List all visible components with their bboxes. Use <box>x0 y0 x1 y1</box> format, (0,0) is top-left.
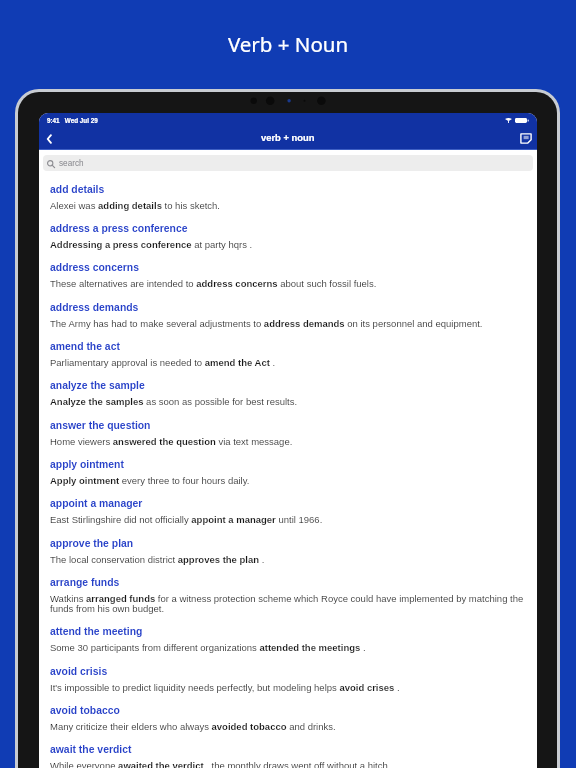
staticText: East Stirlingshire did not officially ap… <box>50 514 323 525</box>
staticText: arrange funds <box>50 577 120 589</box>
button[interactable]: address concerns <box>50 257 526 297</box>
staticText: avoid tobacco <box>50 705 120 717</box>
staticText: appoint a manager <box>50 498 143 510</box>
staticText: Parliamentary approval is needed to amen… <box>50 357 276 368</box>
button[interactable]: analyze the sample <box>50 375 526 415</box>
staticText: While everyone awaited the verdict , the… <box>50 760 391 768</box>
staticText: Some 30 participants from different orga… <box>50 642 366 653</box>
staticText: Watkins arranged funds for a witness pro… <box>50 593 526 614</box>
button[interactable]: address a press conference <box>50 218 526 257</box>
staticText: analyze the sample <box>50 380 145 392</box>
staticText: Analyze the samples as soon as possible … <box>50 396 298 407</box>
staticText: verb + noun <box>261 132 315 143</box>
staticText: 9:41 Wed Jul 29 <box>47 117 98 124</box>
staticText: address demands <box>50 302 139 314</box>
staticText: address a press conference <box>50 223 188 235</box>
button[interactable]: add details <box>50 179 526 218</box>
staticText: await the verdict <box>50 744 132 756</box>
staticText: The local conservation district approves… <box>50 554 265 565</box>
staticText: Alexei was adding details to his sketch. <box>50 200 220 211</box>
staticText: apply ointment <box>50 459 124 471</box>
button[interactable]: Notes <box>515 128 537 149</box>
button[interactable]: answer the question <box>50 415 526 454</box>
staticText: Many criticize their elders who always a… <box>50 721 336 732</box>
staticText: Addressing a press conference at party h… <box>50 239 253 250</box>
staticText: attend the meeting <box>50 626 143 638</box>
button[interactable]: approve the plan <box>50 533 526 572</box>
staticText: The Army has had to make several adjustm… <box>50 318 483 329</box>
button[interactable]: await the verdict <box>50 739 526 768</box>
button[interactable]: apply ointment <box>50 454 526 493</box>
staticText: search <box>59 159 84 168</box>
staticText: answer the question <box>50 420 151 432</box>
button[interactable]: appoint a manager <box>50 493 526 533</box>
button[interactable]: Back <box>39 128 60 149</box>
staticText: Home viewers answered the question via t… <box>50 436 293 447</box>
staticText: Verb + Noun <box>0 30 576 58</box>
button[interactable]: arrange funds <box>50 572 526 621</box>
staticText: approve the plan <box>50 538 134 550</box>
staticText: avoid crisis <box>50 666 108 678</box>
staticText: Apply ointment every three to four hours… <box>50 475 250 486</box>
staticText: It's impossible to predict liquidity nee… <box>50 682 400 693</box>
staticText: These alternatives are intended to addre… <box>50 278 377 289</box>
button[interactable]: attend the meeting <box>50 621 526 661</box>
staticText: address concerns <box>50 262 139 274</box>
button[interactable]: amend the act <box>50 336 526 375</box>
staticText: add details <box>50 184 105 196</box>
button[interactable]: address demands <box>50 297 526 336</box>
button[interactable]: search <box>43 155 533 171</box>
button[interactable]: avoid tobacco <box>50 700 526 739</box>
button[interactable]: avoid crisis <box>50 661 526 700</box>
staticText: amend the act <box>50 341 120 353</box>
